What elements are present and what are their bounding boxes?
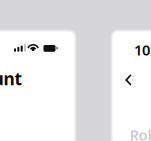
button[interactable]: Back	[125, 74, 134, 87]
staticText: Account	[0, 67, 22, 90]
staticText: Robert Chen	[129, 125, 151, 141]
staticText: 10:31	[134, 40, 151, 59]
